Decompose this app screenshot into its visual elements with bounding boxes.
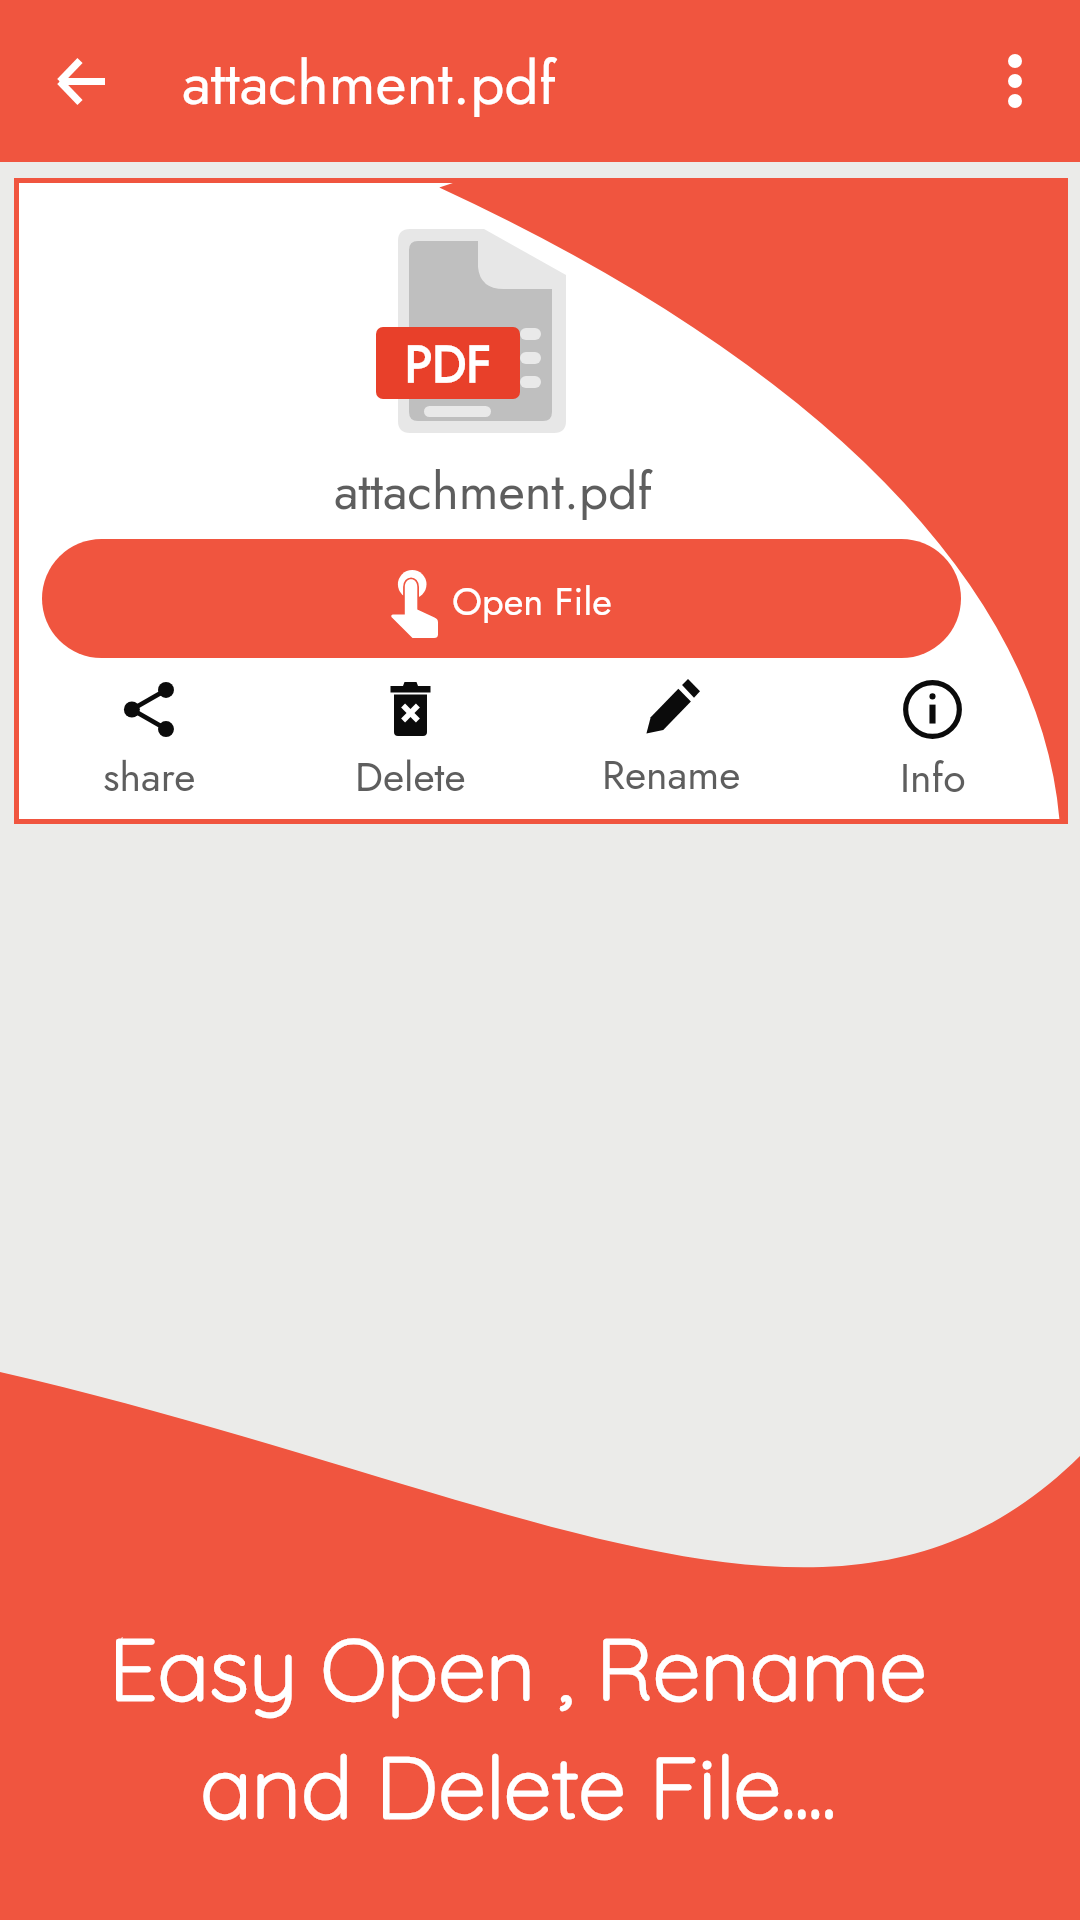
staticText: Delete <box>355 747 466 806</box>
button[interactable]: Open File <box>42 539 961 658</box>
button[interactable]: Rename <box>541 679 802 804</box>
staticText: attachment.pdf <box>334 454 652 528</box>
button[interactable]: share <box>19 679 280 806</box>
button[interactable]: Back <box>26 0 136 162</box>
staticText: share <box>103 747 196 806</box>
staticText: Open File <box>452 574 612 629</box>
button[interactable]: Delete <box>280 679 541 806</box>
staticText: Easy Open , Rename and Delete File.... <box>0 1614 1058 1840</box>
button[interactable]: More options <box>960 0 1070 162</box>
staticText: Info <box>900 748 966 807</box>
staticText: PDF <box>376 328 520 400</box>
staticText: Rename <box>602 745 741 804</box>
button[interactable]: Info <box>802 679 1063 807</box>
staticText: attachment.pdf <box>182 40 556 127</box>
